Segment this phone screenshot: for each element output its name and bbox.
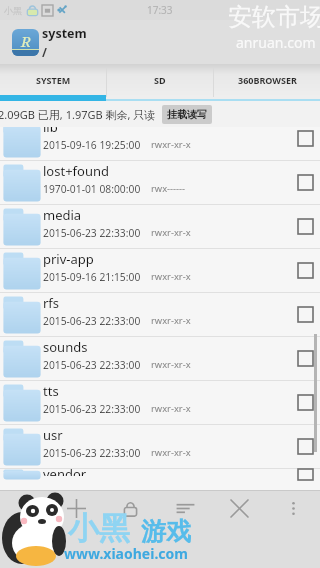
button[interactable]: Select sounds — [298, 351, 313, 366]
button[interactable]: 360BROWSER — [214, 64, 320, 101]
button[interactable]: SD — [107, 64, 213, 101]
staticText: 挂载读写 — [167, 108, 207, 121]
staticText: lib — [43, 127, 58, 136]
button[interactable]: lib — [0, 127, 320, 161]
button[interactable]: sounds — [0, 337, 320, 381]
staticText: anruan.com — [236, 33, 316, 52]
button[interactable]: usr — [0, 425, 320, 469]
staticText: lost+found — [43, 162, 109, 180]
staticText: SYSTEM — [36, 74, 71, 86]
staticText: media — [43, 206, 82, 224]
staticText: 安软市场 — [228, 2, 320, 32]
staticText: 2015-06-23 22:33:00 — [43, 402, 149, 416]
staticText: 1970-01-01 08:00:00 — [43, 182, 149, 196]
staticText: tts — [43, 382, 59, 400]
button[interactable]: rfs — [0, 293, 320, 337]
button[interactable]: Sort — [167, 491, 203, 526]
button[interactable]: Select rfs — [298, 307, 313, 322]
staticText: rwxr-xr-x — [151, 358, 191, 371]
button[interactable]: Select usr — [298, 439, 313, 454]
staticText: 2.09GB 已用, 1.97GB 剩余, 只读 — [0, 107, 156, 122]
staticText: rwx------ — [151, 182, 186, 195]
staticText: rwxr-xr-x — [151, 314, 191, 327]
staticText: sounds — [43, 338, 88, 356]
staticText: 小黑 — [68, 509, 130, 548]
staticText: priv-app — [43, 250, 94, 268]
staticText: 2015-06-23 22:33:00 — [43, 226, 149, 240]
staticText: / — [42, 44, 47, 60]
staticText: usr — [43, 426, 63, 444]
staticText: SD — [154, 74, 166, 86]
button[interactable]: Select media — [298, 219, 313, 234]
button[interactable]: Select priv-app — [298, 263, 313, 278]
staticText: 2015-09-16 21:15:00 — [43, 270, 149, 284]
button[interactable]: Select lost+found — [298, 175, 313, 190]
staticText: rwxr-xr-x — [151, 226, 191, 239]
button[interactable]: Select lib — [298, 131, 313, 146]
staticText: vendor — [43, 465, 87, 476]
staticText: R — [21, 31, 31, 51]
staticText: rwxr-xr-x — [151, 138, 191, 151]
button[interactable]: Select tts — [298, 395, 313, 410]
staticText: rwxr-xr-x — [151, 270, 191, 283]
staticText: 小黑 — [4, 5, 22, 16]
button[interactable]: priv-app — [0, 249, 320, 293]
button[interactable]: More options — [275, 491, 311, 526]
button[interactable]: tts — [0, 381, 320, 425]
button[interactable]: SYSTEM — [0, 64, 106, 101]
staticText: 2015-06-23 22:33:00 — [43, 358, 149, 372]
staticText: www.xiaohei.com — [64, 544, 188, 563]
staticText: rwxr-xr-x — [151, 446, 191, 459]
staticText: rwxr-xr-x — [151, 402, 191, 415]
button[interactable]: Lock — [112, 491, 148, 526]
staticText: 2015-09-16 19:25:00 — [43, 138, 149, 152]
staticText: 游戏 — [141, 516, 191, 547]
button[interactable]: Select vendor — [298, 469, 313, 480]
staticText: rfs — [43, 294, 60, 312]
staticText: 17:33 — [147, 3, 173, 17]
button[interactable]: lost+found — [0, 161, 320, 205]
button[interactable]: New folder — [58, 491, 94, 526]
button[interactable]: vendor — [0, 469, 320, 480]
staticText: system — [42, 25, 87, 42]
staticText: 2015-06-23 22:33:00 — [43, 446, 149, 460]
staticText: 360BROWSER — [238, 74, 297, 86]
button[interactable]: 挂载读写 — [167, 105, 207, 124]
button[interactable]: media — [0, 205, 320, 249]
button[interactable]: Up one level — [12, 29, 39, 56]
staticText: 2015-06-23 22:33:00 — [43, 314, 149, 328]
button[interactable]: Close — [221, 491, 257, 526]
